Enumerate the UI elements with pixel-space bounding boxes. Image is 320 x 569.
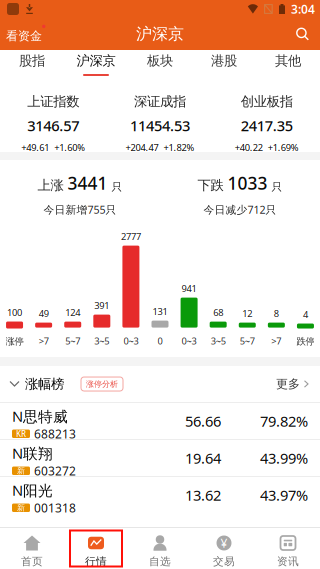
staticText: +40.22	[235, 141, 263, 154]
staticText: 上涨	[37, 177, 63, 193]
staticText: 新	[17, 466, 25, 476]
button[interactable]: 创业板指	[213, 76, 320, 154]
staticText: 4	[303, 308, 308, 320]
staticText: 跌停	[296, 335, 314, 347]
button[interactable]: 涨幅榜	[0, 366, 64, 402]
button[interactable]: 首页	[0, 528, 64, 569]
button[interactable]: 沪深京	[64, 50, 128, 78]
staticText: 12	[242, 307, 252, 320]
button[interactable]: ¥	[192, 528, 256, 569]
staticText: 涨停	[5, 335, 23, 347]
staticText: 资讯	[277, 555, 299, 568]
staticText: 港股	[211, 53, 237, 69]
staticText: 49	[39, 307, 49, 320]
staticText: 0~3	[182, 335, 197, 347]
staticText: 2777	[121, 230, 141, 243]
staticText: 19.64	[185, 448, 221, 468]
staticText: 0~3	[123, 335, 138, 347]
button[interactable]: 港股	[192, 50, 256, 78]
staticText: N联翔	[12, 443, 53, 463]
staticText: 3:04	[291, 1, 315, 17]
staticText: 100	[7, 306, 22, 318]
staticText: 今日减少712只	[203, 202, 276, 217]
button[interactable]: N联翔	[0, 439, 320, 476]
staticText: ¥	[220, 535, 227, 551]
staticText: +49.61	[21, 141, 49, 154]
staticText: 涨幅榜	[25, 376, 64, 392]
staticText: +204.47	[125, 141, 158, 154]
button[interactable]: N思特威	[0, 402, 320, 439]
staticText: 5~7	[240, 335, 255, 347]
staticText: 深证成指	[134, 93, 186, 110]
staticText: 43.99%	[260, 448, 308, 468]
staticText: 131	[152, 305, 167, 318]
staticText: 看资金	[6, 29, 42, 43]
staticText: 391	[94, 299, 109, 312]
staticText: 今日新增755只	[43, 202, 116, 217]
staticText: 板块	[147, 53, 173, 69]
staticText: 自选	[149, 555, 171, 568]
staticText: 56.66	[185, 411, 221, 431]
staticText: 8	[274, 307, 279, 320]
staticText: N阳光	[12, 480, 53, 500]
staticText: 1033	[227, 171, 267, 194]
staticText: 43.97%	[260, 485, 308, 505]
staticText: +1.60%	[54, 141, 85, 154]
staticText: 79.82%	[260, 411, 308, 431]
button[interactable]: 自选	[128, 528, 192, 569]
staticText: 交易	[213, 555, 235, 568]
staticText: 688213	[34, 426, 76, 442]
button[interactable]: 板块	[128, 50, 192, 78]
staticText: 2417.35	[241, 116, 293, 135]
staticText: 3~5	[211, 335, 226, 347]
staticText: 涨停分析	[86, 379, 118, 389]
staticText: 其他	[275, 53, 301, 69]
staticText: 3146.57	[27, 116, 79, 135]
staticText: 001318	[34, 500, 76, 516]
staticText: 沪深京	[76, 53, 115, 69]
staticText: 沪深京	[136, 24, 184, 44]
staticText: 新	[17, 503, 25, 513]
staticText: 941	[182, 282, 197, 295]
staticText: 创业板指	[241, 93, 293, 110]
staticText: 更多	[276, 377, 300, 391]
staticText: 124	[65, 306, 80, 319]
staticText: 下跌	[197, 177, 223, 193]
staticText: 只	[271, 180, 282, 193]
staticText: 0	[157, 335, 162, 347]
staticText: +1.82%	[163, 141, 194, 154]
staticText: 行情	[85, 555, 107, 568]
button[interactable]: N阳光	[0, 476, 320, 513]
staticText: 5~7	[65, 335, 80, 347]
button[interactable]: 上证指数	[0, 76, 107, 154]
staticText: KR	[16, 428, 26, 439]
staticText: 68	[213, 306, 223, 319]
button[interactable]: 深证成指	[107, 76, 213, 154]
staticText: +1.69%	[268, 141, 299, 154]
staticText: N思特威	[12, 406, 68, 426]
button[interactable]: 更多	[276, 366, 320, 402]
staticText: 3441	[67, 171, 107, 194]
button[interactable]: 股指	[0, 50, 64, 78]
staticText: 上证指数	[27, 93, 79, 110]
staticText: 股指	[19, 53, 45, 69]
button[interactable]: 看资金	[0, 18, 53, 50]
staticText: 首页	[21, 555, 43, 568]
staticText: 3~5	[94, 335, 109, 347]
staticText: 13.62	[185, 485, 221, 505]
button[interactable]: 其他	[256, 50, 320, 78]
button[interactable]: 行情	[64, 528, 128, 569]
staticText: 只	[111, 180, 122, 193]
staticText: >7	[39, 335, 49, 347]
button[interactable]: 涨停分析	[81, 377, 123, 391]
button[interactable]: Search	[296, 18, 320, 50]
staticText: 11454.53	[130, 116, 190, 135]
staticText: 603272	[34, 463, 76, 479]
button[interactable]: 资讯	[256, 528, 320, 569]
staticText: >7	[271, 335, 281, 347]
